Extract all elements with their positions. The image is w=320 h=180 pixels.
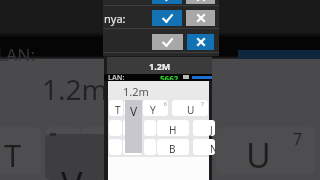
button[interactable]: T [109,100,123,116]
staticText: 5662 [160,73,179,80]
staticText: B [169,142,176,155]
button[interactable] [144,120,156,136]
staticText: U [187,103,195,116]
button[interactable]: N [193,139,215,155]
button[interactable]: Confirm [152,10,182,26]
staticText: Y [150,103,156,116]
staticText: 7 [201,101,204,108]
staticText: V [61,160,83,180]
button[interactable]: Confirm [152,0,182,4]
button[interactable]: B [157,139,189,155]
button[interactable]: Confirm [152,34,183,50]
staticText: J [210,123,213,136]
staticText: nya: [104,11,126,26]
button[interactable] [81,127,141,174]
button[interactable]: Cancel [186,10,215,26]
button[interactable] [144,139,156,155]
staticText: H [169,123,177,136]
staticText: 6 [164,101,167,108]
button[interactable] [109,120,122,136]
button[interactable]: U [216,127,315,174]
staticText: N [210,142,215,155]
staticText: V [130,103,138,119]
staticText: 7 [293,128,303,150]
button[interactable] [46,127,80,174]
button[interactable] [124,100,142,116]
button[interactable]: V [125,100,142,153]
button[interactable] [109,139,122,155]
button[interactable] [123,120,142,136]
staticText: 1.2m [42,70,108,108]
button[interactable]: Y [143,100,168,116]
button[interactable]: Cancel [186,0,215,4]
staticText: 1.2M [149,60,171,72]
button[interactable]: H [157,120,189,136]
button[interactable]: Cancel [187,34,214,50]
button[interactable]: T [0,127,41,174]
staticText: LAN: [0,43,36,66]
button[interactable]: J [193,120,215,136]
button[interactable] [123,139,142,155]
button[interactable]: U [172,100,208,116]
button[interactable]: V [45,134,106,180]
staticText: T [4,134,22,174]
staticText: U [246,132,271,174]
staticText: T [115,103,121,116]
staticText: LAN: [108,73,125,80]
staticText: 1.2m [123,84,149,99]
